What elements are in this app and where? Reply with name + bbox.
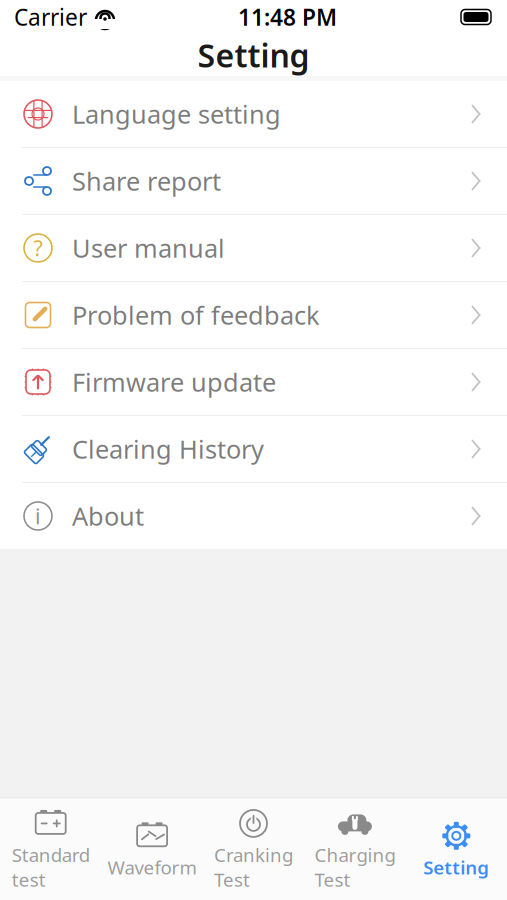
button[interactable]: Charging Test (304, 798, 406, 900)
button[interactable]: Share report (0, 148, 507, 215)
staticText: i (35, 502, 41, 530)
staticText: Problem of feedback (72, 298, 320, 332)
staticText: Language setting (72, 97, 281, 131)
staticText: 11:48 PM (238, 2, 337, 32)
button[interactable]: i (0, 483, 507, 549)
button[interactable]: Language setting (0, 81, 507, 148)
staticText: Carrier (14, 2, 87, 32)
button[interactable]: Waveform (101, 811, 203, 888)
staticText: Setting (197, 34, 309, 76)
button[interactable]: Problem of feedback (0, 282, 507, 349)
staticText: Cranking Test (214, 842, 293, 892)
button[interactable]: Setting (406, 811, 507, 888)
staticText: Setting (423, 855, 489, 880)
staticText: ? (33, 234, 42, 262)
staticText: Waveform (108, 855, 197, 880)
button[interactable]: Standard test (0, 798, 101, 900)
button[interactable]: Clearing History (0, 416, 507, 483)
staticText: Charging Test (314, 842, 395, 892)
button[interactable]: Cranking Test (203, 798, 304, 900)
staticText: User manual (72, 231, 225, 265)
button[interactable]: ? (0, 215, 507, 282)
staticText: About (72, 499, 144, 533)
button[interactable]: Firmware update (0, 349, 507, 416)
staticText: Standard test (12, 842, 90, 892)
staticText: Firmware update (72, 365, 276, 399)
staticText: Share report (72, 164, 221, 198)
staticText: Clearing History (72, 432, 264, 466)
